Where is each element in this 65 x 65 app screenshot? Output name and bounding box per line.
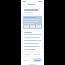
button[interactable] <box>23 8 42 14</box>
button[interactable]: Back <box>23 3 26 6</box>
button[interactable] <box>23 53 42 56</box>
button[interactable]: Back <box>21 2 44 7</box>
button[interactable] <box>33 58 42 62</box>
button[interactable] <box>23 31 42 51</box>
button[interactable] <box>23 16 42 29</box>
